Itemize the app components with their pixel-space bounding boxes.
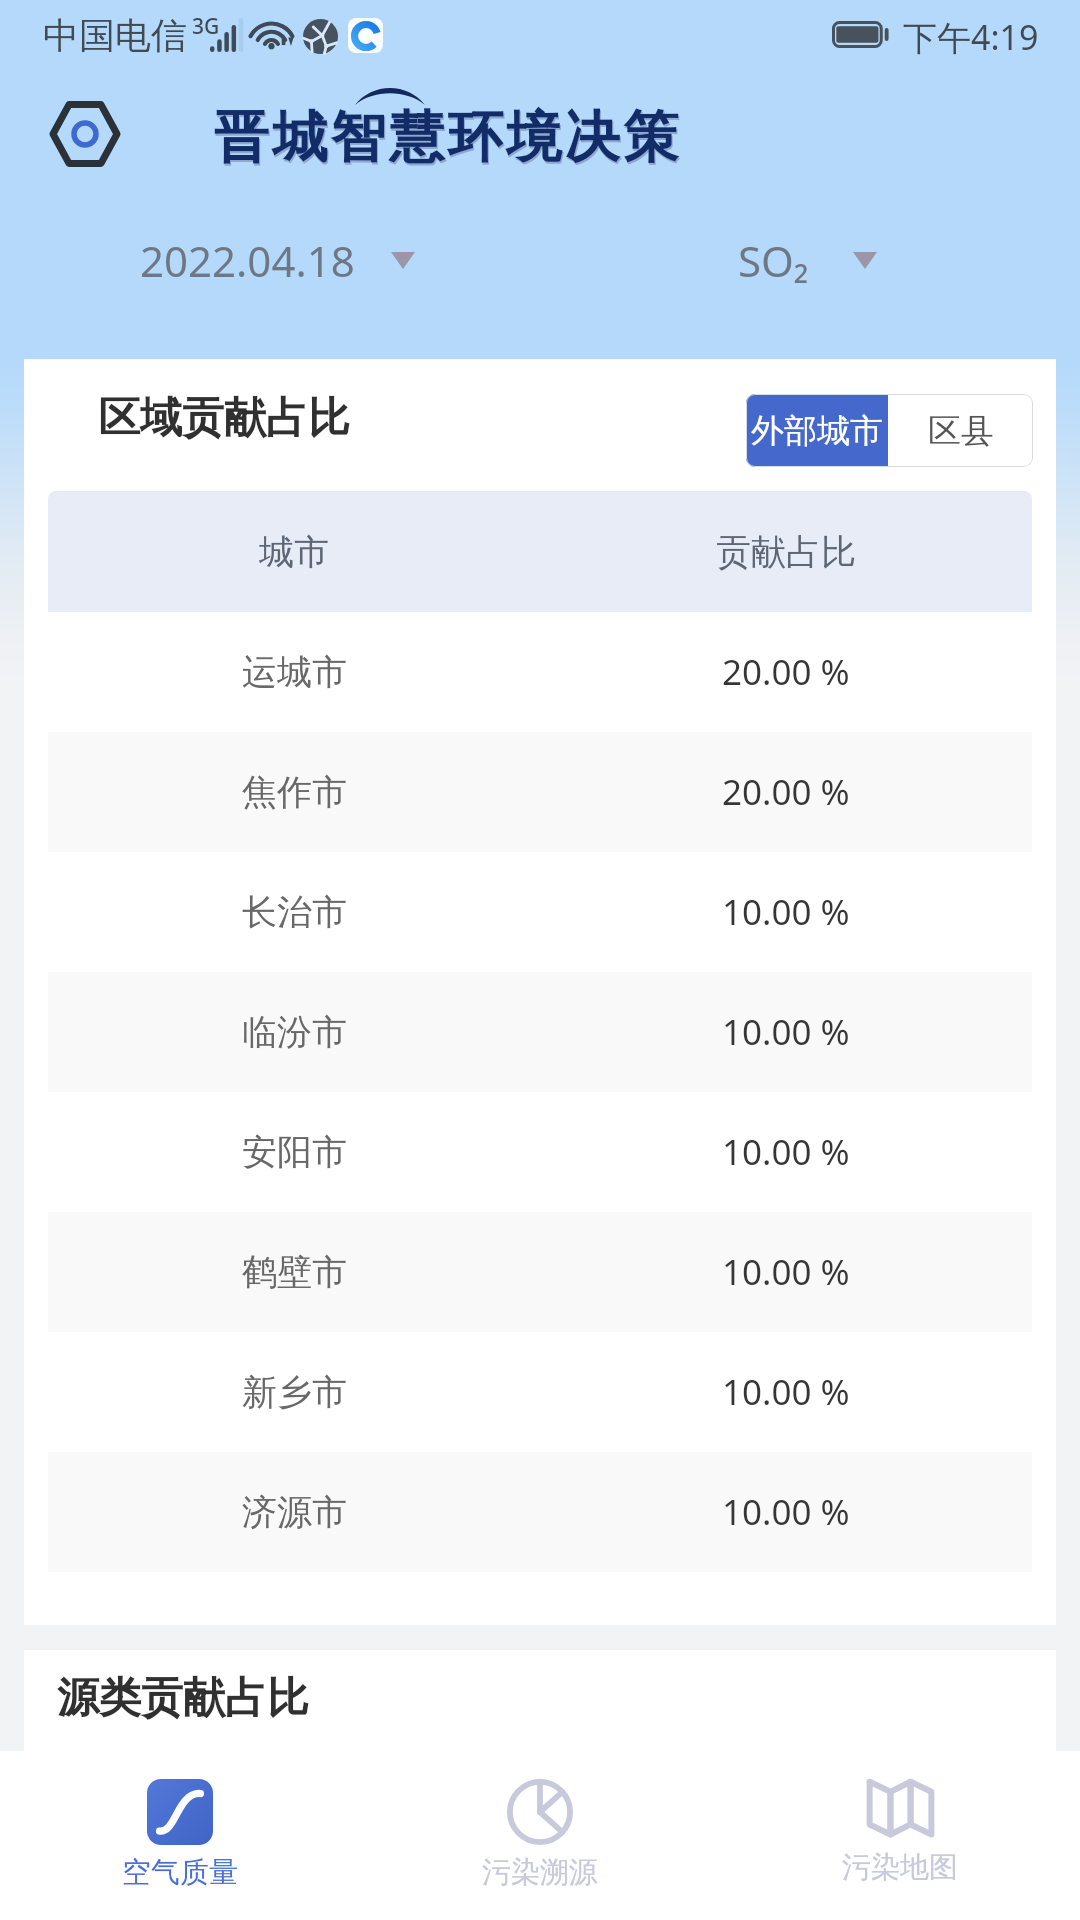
staticText: 区域贡献占比 (98, 392, 350, 445)
button[interactable]: 鹤壁市 (48, 1212, 1032, 1332)
staticText: 3G (192, 12, 220, 41)
staticText: 城市 (259, 530, 329, 574)
staticText: SO₂ (738, 232, 809, 289)
staticText: 污染地图 (842, 1849, 958, 1886)
staticText: 源类贡献占比 (57, 1672, 309, 1725)
button[interactable]: 污染溯源 (360, 1751, 720, 1920)
staticText: 空气质量 (122, 1854, 238, 1891)
staticText: 贡献占比 (716, 530, 856, 574)
button[interactable]: 临汾市 (48, 972, 1032, 1092)
staticText: 10.00 % (722, 1248, 850, 1296)
staticText: 10.00 % (722, 888, 850, 936)
button[interactable]: 新乡市 (48, 1332, 1032, 1452)
staticText: 20.00 % (722, 648, 850, 696)
staticText: 下午4:19 (903, 14, 1039, 60)
button[interactable]: 空气质量 (0, 1751, 360, 1920)
staticText: 2022.04.18 (140, 232, 355, 289)
staticText: 中国电信 (43, 13, 187, 58)
staticText: 10.00 % (722, 1008, 850, 1056)
staticText: 10.00 % (722, 1368, 850, 1416)
staticText: 污染溯源 (482, 1854, 598, 1891)
staticText: 长治市 (242, 890, 347, 934)
staticText: 10.00 % (722, 1128, 850, 1176)
button[interactable]: 焦作市 (48, 732, 1032, 852)
button[interactable]: 污染地图 (720, 1751, 1080, 1920)
button[interactable]: 安阳市 (48, 1092, 1032, 1212)
staticText: 外部城市 (751, 410, 883, 452)
staticText: 临汾市 (242, 1010, 347, 1054)
staticText: 10.00 % (722, 1488, 850, 1536)
staticText: 20.00 % (722, 768, 850, 816)
button[interactable]: 区县 (888, 394, 1033, 467)
staticText: 安阳市 (242, 1130, 347, 1174)
button[interactable]: SO₂ (738, 232, 877, 289)
staticText: 鹤壁市 (242, 1250, 347, 1294)
button[interactable]: 济源市 (48, 1452, 1032, 1572)
button[interactable]: 运城市 (48, 612, 1032, 732)
staticText: 运城市 (242, 650, 347, 694)
button[interactable]: Logo (50, 97, 120, 171)
staticText: 新乡市 (242, 1370, 347, 1414)
staticText: 晋城智慧环境决策 (212, 103, 680, 172)
staticText: 晋城智慧环境决策 (213, 105, 681, 174)
button[interactable]: 外部城市 (746, 394, 888, 467)
staticText: 区县 (928, 410, 994, 452)
button[interactable]: 长治市 (48, 852, 1032, 972)
staticText: 焦作市 (242, 770, 347, 814)
button[interactable]: 2022.04.18 (140, 232, 415, 289)
staticText: 济源市 (242, 1490, 347, 1534)
